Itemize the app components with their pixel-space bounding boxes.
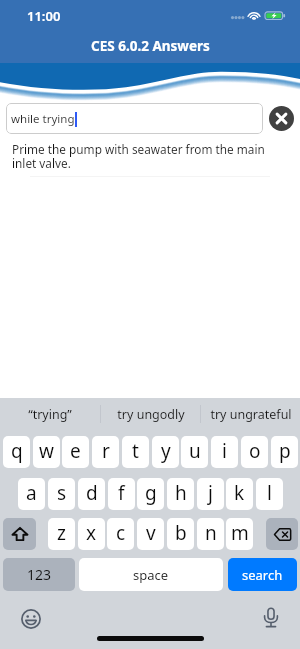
staticText: p	[279, 438, 291, 464]
staticText: 11:00	[27, 7, 61, 25]
staticText: j	[208, 480, 213, 506]
staticText: try ungodly	[117, 406, 185, 423]
staticText: u	[189, 438, 201, 464]
staticText: q	[11, 438, 23, 464]
button[interactable]: q	[3, 436, 30, 468]
button[interactable]: s	[48, 478, 75, 510]
button[interactable]: Clear text	[269, 106, 294, 131]
staticText: m	[231, 520, 249, 546]
staticText: w	[39, 438, 54, 464]
staticText: h	[175, 480, 187, 506]
button[interactable]: m	[226, 518, 253, 550]
button[interactable]: p	[271, 436, 298, 468]
staticText: CES 6.0.2 Answers	[91, 37, 210, 55]
button[interactable]: g	[137, 478, 164, 510]
button[interactable]: j	[197, 478, 224, 510]
staticText: o	[249, 438, 261, 464]
button[interactable]: f	[108, 478, 135, 510]
staticText: x	[86, 520, 97, 546]
staticText: space	[133, 566, 169, 584]
staticText: n	[205, 520, 217, 546]
button[interactable]: o	[241, 436, 268, 468]
staticText: g	[145, 480, 157, 506]
staticText: Prime the pump with seawater from the ma…	[12, 141, 274, 172]
staticText: z	[57, 520, 66, 546]
staticText: l	[267, 480, 272, 506]
button[interactable]: v	[137, 518, 164, 550]
staticText: try ungrateful	[210, 406, 292, 423]
staticText: s	[57, 480, 67, 506]
button[interactable]: Shift	[3, 518, 36, 550]
button[interactable]: space	[79, 558, 223, 591]
staticText: while trying	[11, 111, 75, 127]
staticText: 123	[27, 565, 52, 584]
button[interactable]: x	[78, 518, 105, 550]
button[interactable]: n	[197, 518, 224, 550]
button[interactable]: Backspace	[266, 518, 298, 550]
button[interactable]: Dictate	[260, 607, 281, 628]
staticText: t	[132, 438, 139, 464]
staticText: c	[116, 520, 126, 546]
button[interactable]: w	[33, 436, 60, 468]
button[interactable]: “trying”	[0, 398, 100, 430]
staticText: a	[26, 480, 37, 506]
button[interactable]: t	[122, 436, 149, 468]
staticText: search	[242, 566, 283, 584]
button[interactable]: 123	[3, 558, 75, 591]
button[interactable]: i	[211, 436, 238, 468]
staticText: y	[161, 438, 171, 464]
button[interactable]: b	[167, 518, 194, 550]
button[interactable]: u	[181, 436, 208, 468]
button[interactable]: search	[228, 558, 297, 591]
staticText: i	[222, 438, 227, 464]
button[interactable]: l	[256, 478, 283, 510]
button[interactable]: z	[48, 518, 75, 550]
button[interactable]: h	[167, 478, 194, 510]
button[interactable]: r	[92, 436, 119, 468]
staticText: b	[175, 520, 187, 546]
button[interactable]: k	[226, 478, 253, 510]
button[interactable]: y	[152, 436, 179, 468]
staticText: k	[234, 480, 245, 506]
staticText: v	[146, 520, 156, 546]
button[interactable]: try ungrateful	[201, 398, 300, 430]
button[interactable]: while trying	[6, 103, 263, 134]
button[interactable]: c	[107, 518, 134, 550]
staticText: d	[86, 480, 98, 506]
staticText: “trying”	[28, 406, 72, 423]
button[interactable]: d	[78, 478, 105, 510]
button[interactable]: a	[18, 478, 45, 510]
button[interactable]: e	[62, 436, 89, 468]
staticText: r	[102, 438, 110, 464]
staticText: f	[118, 480, 125, 506]
staticText: e	[70, 438, 81, 464]
button[interactable]: try ungodly	[101, 398, 200, 430]
button[interactable]: Emoji keyboard	[20, 608, 41, 629]
